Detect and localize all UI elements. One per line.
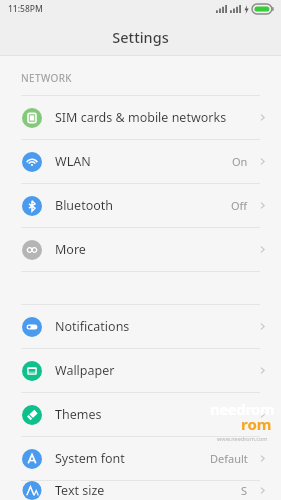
button[interactable]: SIM cards xyxy=(0,96,281,139)
staticText: Bluetooth xyxy=(55,197,231,214)
other: WLAN xyxy=(22,152,42,172)
other: System font xyxy=(22,449,42,469)
staticText: Settings xyxy=(112,27,169,47)
other: Themes xyxy=(22,405,42,425)
staticText: Default xyxy=(210,451,248,466)
staticText: Notifications xyxy=(55,318,257,335)
staticText: SIM cards & mobile networks xyxy=(55,109,257,126)
button[interactable]: Themes xyxy=(0,393,281,436)
other: Text size xyxy=(22,481,42,500)
staticText: WLAN xyxy=(55,153,232,170)
staticText: NETWORK xyxy=(21,71,72,85)
button[interactable]: Bluetooth xyxy=(0,184,281,227)
other: More xyxy=(22,240,42,260)
staticText: Themes xyxy=(55,406,257,423)
staticText: On xyxy=(232,154,248,169)
staticText: S xyxy=(241,483,248,498)
staticText: rom xyxy=(241,414,272,434)
button[interactable]: More xyxy=(0,228,281,271)
other: Bluetooth xyxy=(22,196,42,216)
staticText: 11:58PM xyxy=(8,3,43,15)
button[interactable]: WLAN xyxy=(0,140,281,183)
staticText: Text size xyxy=(55,482,241,499)
staticText: System font xyxy=(55,450,210,467)
button[interactable]: Notifications xyxy=(0,305,281,348)
button[interactable]: Wallpaper xyxy=(0,349,281,392)
other: SIM cards xyxy=(22,108,42,128)
button[interactable]: System font xyxy=(0,437,281,480)
staticText: www.needrom.com xyxy=(217,435,268,442)
button[interactable]: Text size xyxy=(0,481,281,500)
staticText: Wallpaper xyxy=(55,362,257,379)
other: Notifications xyxy=(22,317,42,337)
staticText: More xyxy=(55,241,257,258)
staticText: needrom xyxy=(210,399,275,419)
other: Wallpaper xyxy=(22,361,42,381)
staticText: Off xyxy=(231,198,248,213)
